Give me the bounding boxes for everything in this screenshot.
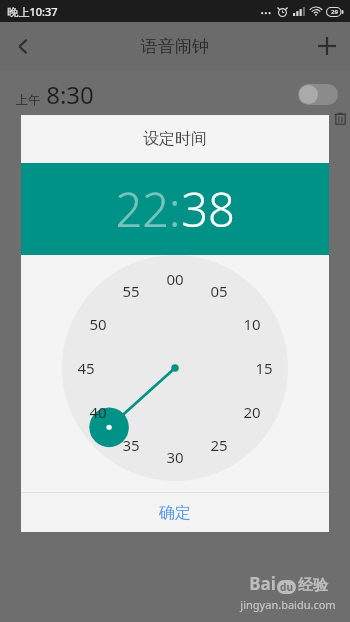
staticText: 语音闹钟 [141,36,209,57]
button[interactable]: 22: [115,177,181,241]
staticText: 55 [122,281,140,301]
staticText: Bai [249,572,276,595]
button[interactable]: 38 [181,177,235,241]
staticText: du [280,580,293,594]
staticText: 25 [210,435,228,455]
button[interactable]: Back [0,23,46,69]
staticText: 40 [89,402,107,422]
staticText: 38 [181,177,235,241]
staticText: 晚上10:37 [7,4,58,19]
staticText: 22: [115,177,181,241]
staticText: 15 [255,358,273,378]
staticText: 8:30 [46,78,94,111]
staticText: 30 [166,447,184,467]
button[interactable]: Alarm toggle [298,84,338,105]
staticText: 50 [89,314,107,334]
staticText: 29 [331,8,338,16]
staticText: 10 [243,314,261,334]
staticText: 经验 [298,576,328,595]
staticText: 35 [122,435,140,455]
staticText: 设定时间 [143,129,207,149]
staticText: 45 [77,358,95,378]
button[interactable]: Add alarm [304,23,350,69]
staticText: 05 [210,281,228,301]
staticText: 00 [166,269,184,289]
button[interactable]: 确定 [21,493,329,532]
button[interactable]: Delete alarm [330,108,350,128]
staticText: 确定 [159,503,191,523]
staticText: 20 [243,402,261,422]
staticText: jingyan.baidu.com [240,597,336,612]
button[interactable]: 上午 [0,70,350,118]
staticText: 上午 [16,92,40,107]
